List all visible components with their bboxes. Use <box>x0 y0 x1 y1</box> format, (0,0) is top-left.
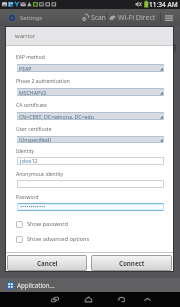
button[interactable] <box>17 180 164 188</box>
staticText: Phase 2 authentication <box>16 78 70 85</box>
button[interactable]: Wi-Fi Direct <box>109 9 156 26</box>
staticText: Wi-Fi Direct <box>118 13 156 23</box>
staticText: User certificate <box>16 126 52 133</box>
button[interactable]: Application... <box>7 281 55 289</box>
staticText: 11:34 AM <box>149 0 178 9</box>
button[interactable]: •••••••••••• <box>17 203 164 211</box>
staticText: CA certificate <box>16 102 47 109</box>
button[interactable]: PEAP <box>17 64 164 72</box>
button[interactable]: MSCHAPV2 <box>17 88 164 96</box>
staticText: warrior <box>15 32 36 40</box>
staticText: Identity <box>16 148 35 155</box>
staticText: EAP method <box>16 54 45 61</box>
button[interactable]: Settings <box>7 9 43 26</box>
staticText: MSCHAPV2 <box>19 89 47 96</box>
button[interactable]: Show keyboard <box>140 292 154 307</box>
staticText: jdoe12 <box>20 157 38 165</box>
button[interactable]: Back <box>114 292 128 307</box>
staticText: Scan <box>91 13 107 22</box>
button[interactable]: Cancel <box>8 256 86 270</box>
staticText: CN=CERT, DC=winona, DC=edu <box>19 113 94 120</box>
button[interactable]: Show advanced options <box>16 235 136 243</box>
button[interactable]: Home <box>81 292 95 307</box>
staticText: Password <box>16 194 39 201</box>
staticText: PEAP <box>19 65 32 72</box>
button[interactable]: jdoe12 <box>17 157 164 165</box>
button[interactable]: Scan <box>82 9 107 26</box>
button[interactable]: Recent apps <box>48 292 62 307</box>
button[interactable]: CN=CERT, DC=winona, DC=edu <box>17 112 164 120</box>
staticText: Settings <box>20 14 43 22</box>
staticText: Show password <box>27 220 69 228</box>
button[interactable]: More options <box>163 9 174 26</box>
staticText: (Unspecified) <box>19 136 51 143</box>
button[interactable]: Connect <box>92 256 171 270</box>
staticText: Application... <box>17 281 55 289</box>
button[interactable]: (Unspecified) <box>17 136 164 143</box>
staticText: Show advanced options <box>27 235 90 243</box>
staticText: Cancel <box>37 259 58 267</box>
staticText: Connect <box>119 259 145 267</box>
staticText: Anonymous identity <box>16 171 64 178</box>
button[interactable]: Show password <box>16 220 136 228</box>
staticText: •••••••••••• <box>20 203 46 211</box>
